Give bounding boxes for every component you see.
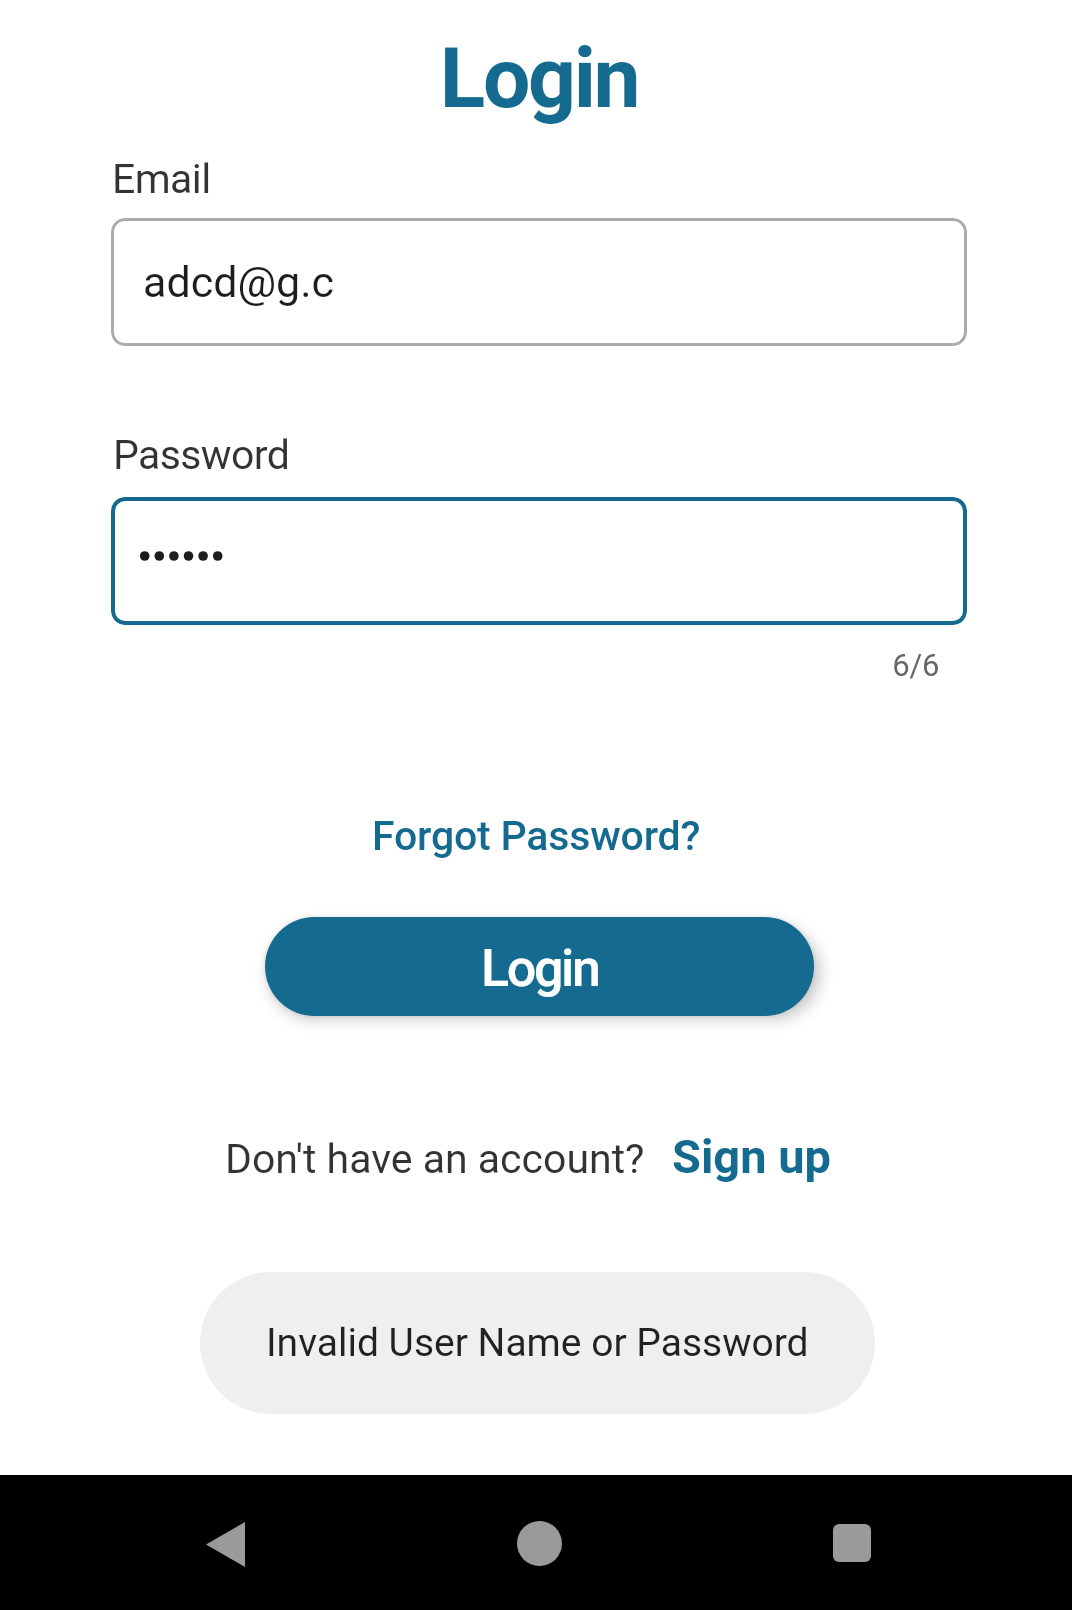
button[interactable]: [517, 1521, 562, 1566]
button[interactable]: [196, 1512, 256, 1576]
button[interactable]: [833, 1524, 871, 1562]
button[interactable]: Forgot Password?: [372, 812, 701, 860]
button[interactable]: Sign up: [672, 1129, 832, 1184]
staticText: adcd@g.c: [143, 257, 335, 307]
staticText: Invalid User Name or Password: [266, 1320, 809, 1366]
button[interactable]: adcd@g.c: [111, 218, 967, 346]
staticText: Don't have an account?: [225, 1135, 645, 1183]
staticText: Password: [113, 431, 290, 479]
staticText: Sign up: [672, 1129, 832, 1184]
button[interactable]: [111, 497, 967, 625]
staticText: Login: [481, 938, 599, 999]
staticText: Email: [112, 155, 211, 203]
staticText: Login: [3, 29, 1072, 127]
staticText: 6/6: [111, 647, 939, 683]
button[interactable]: Login: [265, 917, 814, 1016]
staticText: Forgot Password?: [372, 812, 701, 860]
